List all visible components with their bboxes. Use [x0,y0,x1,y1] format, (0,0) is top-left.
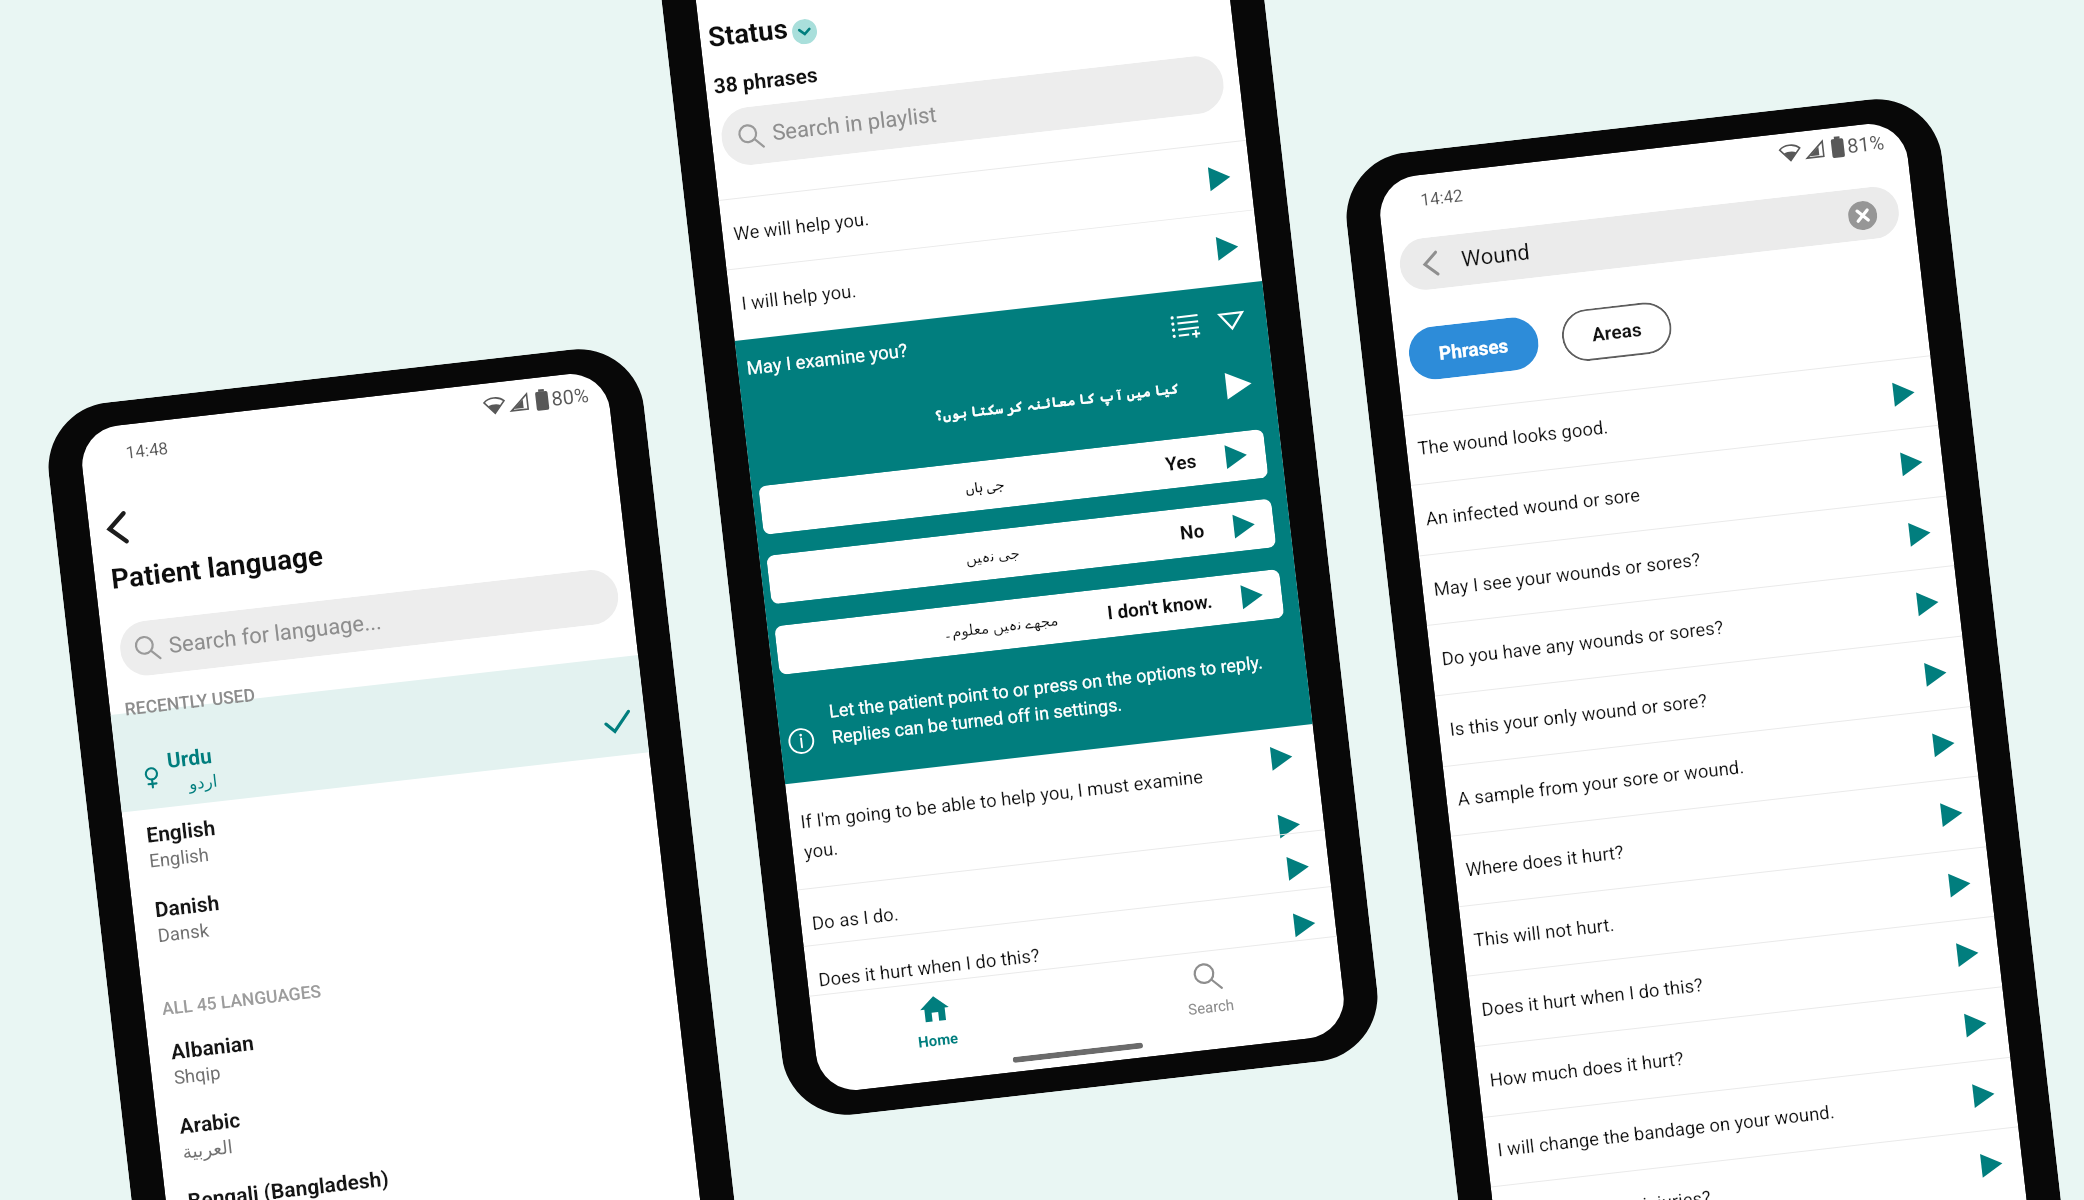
staticText: No [768,519,1205,591]
staticText: 14:48 [125,438,170,463]
staticText: Does it hurt when I do this? [817,944,1041,992]
staticText: you. [803,838,840,863]
button[interactable]: Areas [1559,300,1674,364]
staticText: May I see your wounds or sores? [1432,549,1702,601]
staticText: Where does it hurt? [1464,841,1625,881]
staticText: May I examine you? [746,340,909,380]
staticText: Is this your only wound or sore? [1448,690,1708,741]
button[interactable] [1483,1057,2018,1186]
button[interactable] [1451,776,1986,905]
staticText: I will change the bandage on your wound. [1496,1101,1836,1161]
button[interactable] [1443,706,1978,836]
button[interactable] [718,140,1254,269]
button[interactable] [1411,425,1946,555]
staticText: We will help you. [732,208,871,245]
button[interactable]: Search in playlist [718,53,1227,168]
button[interactable] [122,760,658,892]
staticText: Shqip [173,1062,222,1089]
staticText: جی ہاں [884,466,1085,507]
staticText: Danish [153,891,221,923]
button[interactable]: No [766,498,1276,604]
staticText: Albanian [170,1031,256,1065]
button[interactable]: Phrases [1406,315,1541,382]
button[interactable] [1143,948,1282,1052]
button[interactable] [1403,355,1938,485]
button[interactable] [1475,986,2010,1116]
button[interactable]: Change playlist [791,18,818,45]
button[interactable] [797,829,1333,959]
staticText: 14:42 [1419,185,1464,210]
staticText: Do you have any wounds or sores? [1440,616,1725,670]
staticText: اردو [188,770,219,794]
staticText: If I'm going to be able to help you, I m… [799,766,1204,834]
staticText: مجھے نہیں معلوم۔ [900,606,1101,647]
staticText: Search [1140,990,1282,1024]
staticText: جی نہیں [892,536,1093,576]
button[interactable] [1427,565,1962,695]
button[interactable] [785,724,1325,889]
staticText: English [148,844,210,873]
staticText: Replies can be turned off in settings. [831,694,1123,747]
button[interactable] [1435,635,1970,765]
staticText: Do as I do. [811,903,900,935]
staticText: Patient language [109,539,325,596]
staticText: Dansk [157,919,211,947]
staticText: An infected wound or sore [1424,484,1642,530]
staticText: Search for language... [168,609,383,659]
staticText: Arabic [178,1108,243,1140]
staticText: Home [867,1024,1009,1057]
staticText: The wound looks good. [1416,416,1610,460]
staticText: Bengali (Bangladesh) [187,1167,390,1200]
button[interactable] [1491,1126,2026,1200]
staticText: I don't know. [776,590,1213,661]
staticText: Let the patient point to or press on the… [828,651,1264,722]
staticText: ALL 45 LANGUAGES [161,981,322,1020]
staticText: English [145,816,217,849]
button[interactable] [114,688,649,811]
button[interactable] [726,209,1262,339]
button[interactable]: Selected [602,707,633,738]
button[interactable] [131,835,667,966]
button[interactable]: Close [1847,199,1879,232]
staticText: Urdu [166,744,213,774]
staticText: Yes [760,450,1197,521]
button[interactable]: Play [1222,369,1254,401]
button[interactable] [804,886,1339,1016]
button[interactable] [869,979,1009,1083]
button[interactable] [147,977,683,1108]
staticText: I will help you. [740,280,858,315]
staticText: A sample from your sore or wound. [1456,756,1746,811]
staticText: Phrases [1438,334,1510,364]
button[interactable]: Search for language... [117,567,621,678]
button[interactable] [1467,916,2002,1045]
button[interactable] [1419,495,1954,625]
button[interactable]: I don't know. [774,569,1284,675]
staticText: کیا میں آپ کا معائنہ کر سکتا ہوں؟ [745,380,1180,445]
staticText: Areas [1591,318,1643,345]
staticText: العربية [181,1136,234,1164]
staticText: How much does it hurt? [1488,1048,1686,1092]
staticText: Status [706,12,789,53]
button[interactable]: Yes [758,429,1268,535]
staticText: Search in playlist [771,102,939,146]
button[interactable]: Back [103,511,132,545]
staticText: Do you have any injuries? [1504,1187,1713,1200]
staticText: RECENTLY USED [124,685,256,720]
staticText: Wound [1460,239,1532,273]
staticText: 81% [1846,130,1886,157]
button[interactable] [1459,846,1994,976]
button[interactable]: Filter [1217,305,1246,334]
staticText: Does it hurt when I do this? [1480,974,1704,1021]
staticText: 38 phrases [712,63,819,100]
button[interactable] [164,1126,700,1200]
button[interactable]: Add to playlist [1169,309,1201,340]
button[interactable]: Wound [1397,184,1902,293]
staticText: This will not hurt. [1472,914,1616,952]
button[interactable] [156,1051,691,1183]
staticText: 80% [550,383,591,410]
